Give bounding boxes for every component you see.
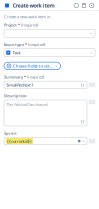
- staticText: Create work item: [12, 2, 54, 9]
- staticText: Issue type: [4, 42, 24, 47]
- staticText: ⌄: [55, 63, 58, 68]
- staticText: {}: [81, 119, 85, 124]
- staticText: (required): [21, 22, 38, 28]
- staticText: This field will be cleared: [6, 102, 47, 107]
- staticText: *: [24, 74, 26, 79]
- staticText: Simplified text 1: [6, 82, 33, 87]
- staticText: Summary: [4, 74, 23, 79]
- staticText: Task: [12, 50, 20, 55]
- staticText: (required): [28, 42, 45, 47]
- staticText: Choose fields to set...: [13, 63, 53, 69]
- staticText: ⌄: [89, 30, 92, 35]
- button[interactable]: Comments: [74, 3, 78, 8]
- staticText: (required): [27, 74, 44, 79]
- button[interactable]: Delete: [82, 3, 86, 8]
- staticText: {}: [81, 82, 85, 87]
- staticText: ⌄: [90, 50, 93, 54]
- staticText: Project: [4, 22, 17, 28]
- button[interactable]: Choose fields to set...: [4, 62, 61, 70]
- staticText: Create a new work item in: [4, 14, 50, 19]
- staticText: Sprint: [4, 130, 17, 136]
- button[interactable]: More options: [89, 3, 94, 8]
- staticText: *: [18, 22, 20, 28]
- staticText: Description: [4, 93, 27, 98]
- staticText: ⌄: [82, 138, 85, 143]
- staticText: {{current.id}}: [7, 138, 32, 144]
- staticText: *: [25, 42, 27, 47]
